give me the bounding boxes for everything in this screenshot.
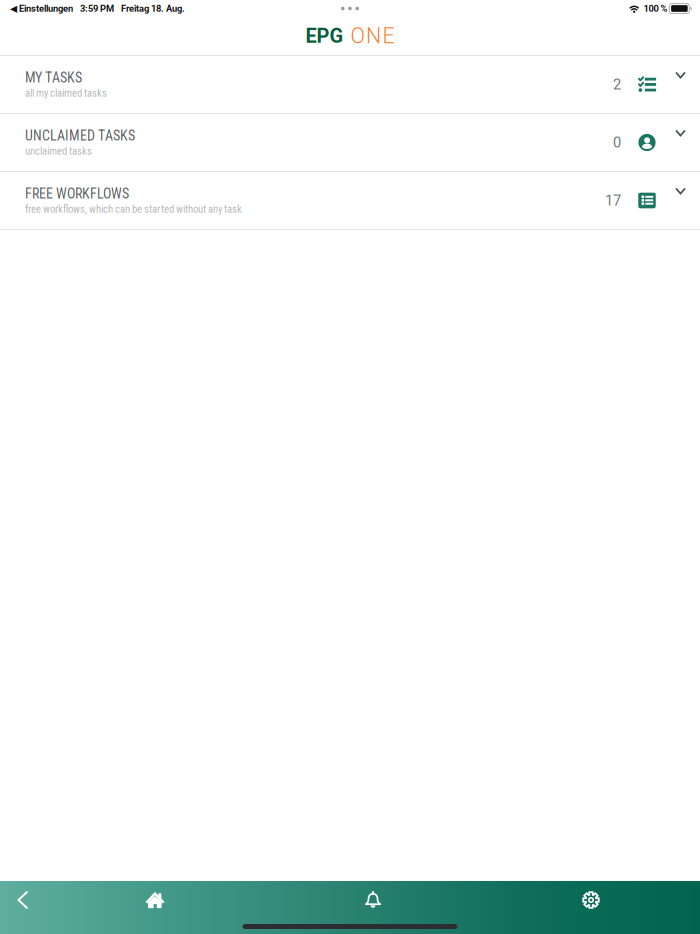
button[interactable]: Notifications bbox=[264, 881, 482, 919]
staticText: UNCLAIMED TASKS bbox=[25, 127, 135, 144]
staticText: 2 bbox=[613, 76, 621, 93]
staticText: FREE WORKFLOWS bbox=[25, 185, 129, 202]
button[interactable]: Home bbox=[46, 881, 264, 919]
staticText: 17 bbox=[605, 192, 621, 209]
staticText: 3:59 PM bbox=[80, 3, 114, 14]
staticText: 0 bbox=[613, 134, 621, 151]
button[interactable]: Back bbox=[0, 881, 46, 919]
button[interactable]: UNCLAIMED TASKS bbox=[0, 114, 700, 171]
staticText: free workflows, which can be started wit… bbox=[25, 203, 242, 215]
staticText: MY TASKS bbox=[25, 69, 82, 86]
staticText: ◀ Einstellungen bbox=[10, 3, 73, 14]
staticText: 100 % bbox=[643, 3, 667, 14]
staticText: unclaimed tasks bbox=[25, 145, 92, 157]
button[interactable]: Settings bbox=[482, 881, 700, 919]
staticText: EPG bbox=[305, 24, 343, 48]
staticText: Freitag 18. Aug. bbox=[121, 3, 185, 14]
button[interactable]: FREE WORKFLOWS bbox=[0, 172, 700, 229]
staticText: ONE bbox=[350, 23, 395, 48]
button[interactable]: MY TASKS bbox=[0, 56, 700, 113]
staticText: all my claimed tasks bbox=[25, 87, 107, 99]
